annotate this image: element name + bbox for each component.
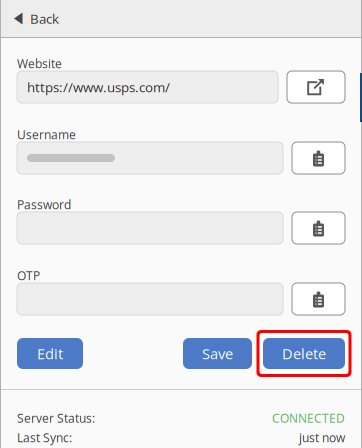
button[interactable]: Edit	[17, 338, 83, 369]
button[interactable]: Copy OTP	[292, 283, 345, 315]
staticText: Password	[17, 196, 71, 213]
button[interactable]: Open website	[287, 71, 345, 103]
staticText: Save	[202, 343, 233, 363]
staticText: just now	[299, 429, 345, 446]
button[interactable]: Back	[0, 0, 362, 37]
button[interactable]: Copy username	[292, 142, 345, 174]
button[interactable]: Save	[183, 338, 252, 369]
staticText: OTP	[17, 267, 40, 284]
staticText: Edit	[37, 343, 63, 363]
staticText: Back	[30, 9, 59, 28]
staticText: Delete	[282, 343, 326, 363]
staticText: https://www.usps.com/	[27, 78, 170, 96]
staticText: CONNECTED	[272, 410, 345, 426]
staticText: Username	[17, 126, 76, 143]
staticText: Last Sync:	[17, 429, 72, 446]
staticText: Server Status:	[17, 410, 95, 426]
button[interactable]: Delete	[263, 338, 345, 369]
staticText: Website	[17, 55, 62, 72]
button[interactable]: Copy password	[292, 212, 345, 244]
